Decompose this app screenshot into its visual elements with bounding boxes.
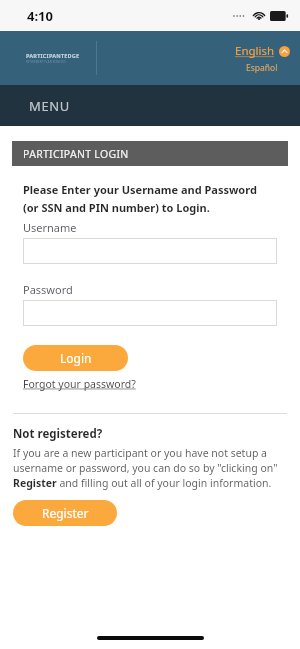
staticText: PARTICIPANTEDGE bbox=[26, 52, 80, 59]
staticText: Not registered? bbox=[13, 426, 103, 442]
staticText: Login bbox=[60, 350, 92, 366]
button[interactable]: Login bbox=[23, 345, 128, 371]
button[interactable]: MENU bbox=[0, 85, 300, 126]
staticText: If you are a new participant or you have… bbox=[13, 446, 287, 490]
staticText: RETIREMENT PLAN SERVICES bbox=[26, 60, 66, 64]
staticText: English bbox=[235, 43, 275, 59]
button[interactable] bbox=[23, 300, 277, 326]
staticText: 4:10 bbox=[27, 7, 53, 25]
staticText: Please Enter your Username and Password bbox=[23, 182, 257, 197]
button[interactable]: Español bbox=[246, 62, 278, 74]
staticText: (or SSN and PIN number) to Login. bbox=[23, 200, 210, 215]
button[interactable]: Forgot your password? bbox=[23, 377, 136, 391]
staticText: Username bbox=[23, 220, 77, 235]
staticText: MENU bbox=[29, 97, 70, 115]
staticText: Password bbox=[23, 282, 73, 297]
staticText: PARTICIPANT LOGIN bbox=[23, 147, 129, 161]
button[interactable] bbox=[23, 238, 277, 264]
button[interactable]: English bbox=[235, 43, 290, 59]
staticText: Register bbox=[42, 505, 89, 521]
button[interactable]: Register bbox=[13, 500, 117, 526]
